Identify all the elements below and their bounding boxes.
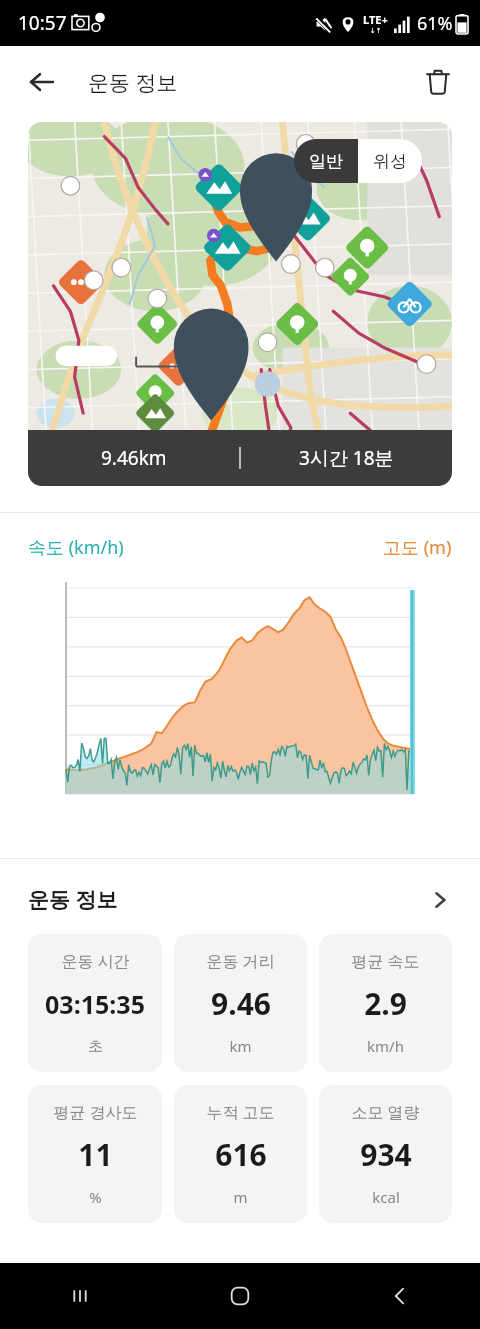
staticText: 03:15:35 xyxy=(45,987,145,1021)
button[interactable]: 운동 정보 xyxy=(0,879,480,920)
staticText: km/h xyxy=(367,1036,404,1056)
button[interactable]: Back xyxy=(320,1263,480,1329)
staticText: 10:57 xyxy=(18,10,67,36)
staticText: LTE+ xyxy=(363,12,388,27)
staticText: 9.46 xyxy=(211,983,271,1024)
button[interactable]: 운동 거리 xyxy=(174,934,307,1072)
staticText: 일반 xyxy=(309,151,343,172)
staticText: 고도 (m) xyxy=(383,535,452,560)
button[interactable]: 운동 시간 xyxy=(28,934,162,1072)
button[interactable]: 위성 xyxy=(358,139,422,183)
staticText: 평균 경사도 xyxy=(53,1101,138,1123)
other: More xyxy=(428,888,452,912)
button[interactable]: 9.46km xyxy=(28,122,452,486)
staticText: 누적 고도 xyxy=(206,1101,275,1123)
button[interactable]: 누적 고도 xyxy=(174,1085,307,1223)
staticText: 소모 열량 xyxy=(351,1101,420,1123)
button[interactable]: Delete xyxy=(414,58,462,106)
button[interactable]: 평균 경사도 xyxy=(28,1085,162,1223)
button[interactable]: 일반 xyxy=(294,139,358,183)
staticText: m xyxy=(233,1187,248,1207)
staticText: 운동 시간 xyxy=(61,950,130,972)
staticText: 11 xyxy=(78,1134,113,1175)
staticText: ↓↑ xyxy=(370,27,382,35)
staticText: 3시간 18분 xyxy=(299,445,394,471)
button[interactable]: Back xyxy=(18,58,66,106)
staticText: 평균 속도 xyxy=(351,950,420,972)
staticText: 61% xyxy=(417,11,453,36)
button[interactable]: Recents xyxy=(0,1263,160,1329)
staticText: 운동 정보 xyxy=(88,68,178,97)
button[interactable]: 소모 열량 xyxy=(319,1085,452,1223)
staticText: 운동 정보 xyxy=(28,885,118,914)
button[interactable]: 평균 속도 xyxy=(319,934,452,1072)
staticText: kcal xyxy=(372,1187,400,1207)
staticText: 운동 거리 xyxy=(206,950,275,972)
staticText: 초 xyxy=(88,1037,103,1056)
staticText: 위성 xyxy=(373,151,407,172)
button[interactable]: Home xyxy=(160,1263,320,1329)
staticText: % xyxy=(89,1187,102,1207)
staticText: 9.46km xyxy=(101,445,167,471)
staticText: km xyxy=(229,1036,252,1056)
staticText: 616 xyxy=(215,1134,267,1175)
staticText: 2.9 xyxy=(364,983,407,1024)
staticText: 속도 (km/h) xyxy=(28,535,124,560)
staticText: 934 xyxy=(360,1134,412,1175)
